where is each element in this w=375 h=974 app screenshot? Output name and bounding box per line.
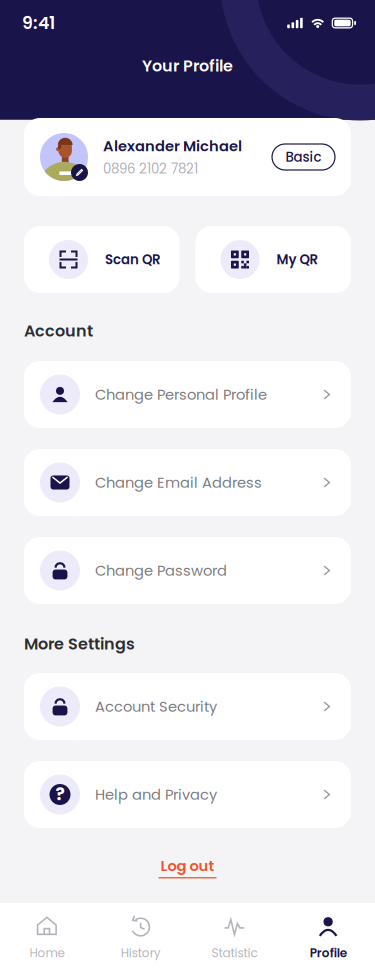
button[interactable]: Scan QR — [24, 226, 179, 293]
staticText: History — [121, 945, 161, 961]
button[interactable]: Log out — [0, 854, 375, 880]
staticText: ? — [55, 782, 64, 806]
staticText: Profile — [310, 945, 347, 961]
button[interactable]: ? — [24, 761, 351, 828]
staticText: 9:41 — [22, 11, 55, 35]
staticText: Change Personal Profile — [95, 384, 267, 405]
staticText: 0896 2102 7821 — [103, 159, 198, 178]
staticText: My QR — [276, 250, 318, 269]
staticText: Help and Privacy — [95, 784, 217, 805]
staticText: Alexander Michael — [103, 136, 242, 156]
staticText: Scan QR — [105, 250, 161, 269]
staticText: Change Email Address — [95, 472, 262, 493]
staticText: Account — [24, 320, 93, 342]
staticText: Statistic — [211, 945, 257, 961]
staticText: Home — [29, 945, 64, 961]
button[interactable]: Home — [0, 903, 94, 974]
button[interactable]: Change Password — [24, 537, 351, 604]
staticText: Change Password — [95, 560, 227, 581]
staticText: Log out — [160, 856, 214, 876]
button[interactable]: Basic — [272, 144, 335, 170]
button[interactable]: Statistic — [187, 903, 281, 974]
button[interactable]: My QR — [195, 226, 351, 293]
staticText: Basic — [285, 148, 321, 166]
staticText: Your Profile — [142, 55, 233, 77]
button[interactable]: Profile — [281, 903, 375, 974]
button[interactable]: Account Security — [24, 673, 351, 740]
button[interactable]: Change Personal Profile — [24, 361, 351, 428]
staticText: More Settings — [24, 633, 135, 655]
button[interactable]: Change Email Address — [24, 449, 351, 516]
button[interactable]: History — [94, 903, 188, 974]
staticText: Account Security — [95, 696, 217, 717]
